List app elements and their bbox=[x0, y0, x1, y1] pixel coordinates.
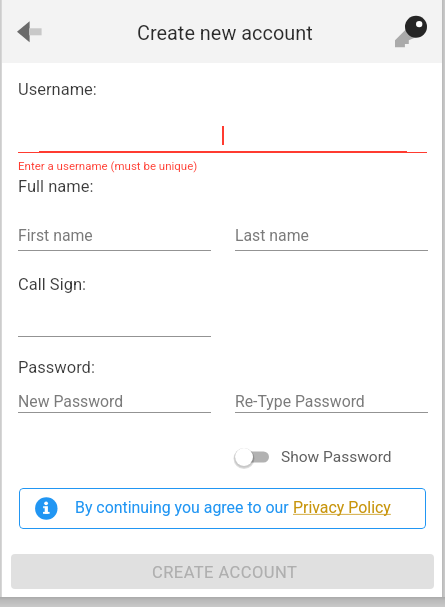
staticText: Password: bbox=[18, 358, 95, 377]
button[interactable]: Show password key bbox=[392, 6, 440, 54]
button[interactable]: CREATE ACCOUNT bbox=[11, 554, 434, 589]
button[interactable]: By continuing you agree to our bbox=[19, 488, 426, 529]
button[interactable] bbox=[18, 222, 211, 252]
staticText: First name bbox=[18, 226, 93, 245]
staticText: Last name bbox=[235, 226, 309, 245]
button[interactable]: Back bbox=[6, 8, 54, 56]
button[interactable] bbox=[235, 388, 428, 416]
staticText: Username: bbox=[18, 80, 97, 99]
button[interactable] bbox=[18, 120, 427, 153]
button[interactable]: Show Password bbox=[229, 440, 279, 476]
staticText: Enter a username (must be unique) bbox=[18, 159, 198, 172]
button[interactable] bbox=[18, 308, 211, 338]
staticText: CREATE ACCOUNT bbox=[152, 563, 298, 582]
staticText: New Password bbox=[18, 392, 124, 411]
staticText: Call Sign: bbox=[18, 275, 87, 294]
staticText: Re-Type Password bbox=[235, 392, 365, 411]
button[interactable]: Privacy Policy bbox=[293, 498, 391, 517]
staticText: Full name: bbox=[18, 177, 94, 196]
button[interactable] bbox=[18, 388, 211, 416]
button[interactable] bbox=[235, 222, 428, 252]
staticText: Show Password bbox=[281, 448, 392, 466]
staticText: By continuing you agree to our bbox=[75, 498, 293, 517]
staticText: Create new account bbox=[137, 22, 313, 45]
